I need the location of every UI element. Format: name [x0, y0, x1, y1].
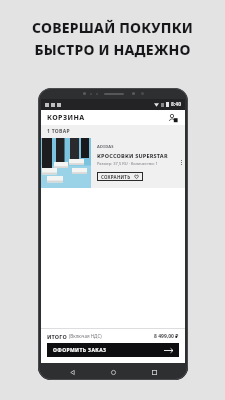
button[interactable]: ADIDAS	[41, 138, 185, 188]
staticText: ОФОРМИТЬ ЗАКАЗ	[53, 347, 107, 354]
staticText: ADIDAS	[97, 144, 114, 149]
button[interactable]: Ещё	[177, 138, 185, 188]
button[interactable]: Недавние	[147, 365, 161, 379]
button[interactable]: СОХРАНИТЬ	[97, 172, 143, 181]
staticText: 1 ТОВАР	[47, 128, 70, 135]
staticText: Размер: 37,5 RU · Количество: 1	[97, 161, 158, 166]
staticText: 8 499,00 ₽	[154, 333, 179, 340]
button[interactable]: ОФОРМИТЬ ЗАКАЗ	[47, 343, 179, 357]
staticText: (Включая НДС)	[69, 333, 102, 339]
staticText: 8:40	[171, 101, 181, 108]
staticText: СОХРАНИТЬ	[101, 174, 131, 180]
button[interactable]: Домой	[106, 365, 120, 379]
staticText: БЫСТРО И НАДЕЖНО	[34, 40, 191, 59]
button[interactable]: Профиль	[167, 112, 179, 124]
button[interactable]: Назад	[65, 365, 79, 379]
staticText: КОРЗИНА	[47, 113, 85, 123]
staticText: ИТОГО	[47, 333, 67, 340]
staticText: КРОССОВКИ SUPERSTAR	[97, 152, 168, 159]
staticText: СОВЕРШАЙ ПОКУПКИ	[32, 18, 193, 37]
